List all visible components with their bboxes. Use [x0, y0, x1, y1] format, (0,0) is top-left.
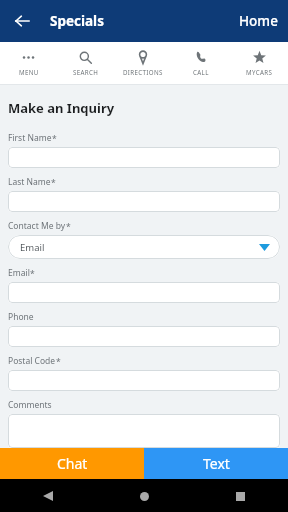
- staticText: CALL: [193, 68, 209, 76]
- button[interactable]: Home: [229, 4, 288, 38]
- button[interactable]: Text input: [8, 282, 280, 303]
- staticText: Comments: [8, 399, 52, 411]
- staticText: Specials: [50, 12, 104, 30]
- button[interactable]: Text: [144, 448, 288, 479]
- staticText: *: [56, 356, 61, 368]
- button[interactable]: Text input: [8, 147, 280, 168]
- staticText: Make an Inquiry: [8, 99, 115, 117]
- staticText: First Name: [8, 132, 52, 144]
- button[interactable]: Text input: [8, 414, 280, 448]
- staticText: Chat: [57, 454, 88, 473]
- button[interactable]: Text input: [8, 326, 280, 347]
- staticText: MENU: [19, 68, 39, 76]
- button[interactable]: Text input: [8, 370, 280, 391]
- staticText: Email: [20, 241, 45, 254]
- staticText: Home: [239, 12, 278, 30]
- staticText: DIRECTIONS: [123, 68, 163, 76]
- button[interactable]: Home: [131, 483, 157, 509]
- button[interactable]: Chat: [0, 448, 144, 479]
- staticText: Contact Me by: [8, 220, 66, 232]
- staticText: Text: [203, 454, 230, 473]
- staticText: Phone: [8, 311, 34, 323]
- button[interactable]: Text input: [8, 191, 280, 212]
- staticText: Last Name: [8, 176, 51, 188]
- button[interactable]: Back: [7, 6, 37, 36]
- button[interactable]: SEARCH: [57, 42, 114, 84]
- button[interactable]: CALL: [172, 42, 230, 84]
- staticText: Postal Code: [8, 355, 56, 367]
- staticText: *: [51, 177, 56, 189]
- button[interactable]: DIRECTIONS: [114, 42, 172, 84]
- button[interactable]: Recent apps: [227, 483, 253, 509]
- staticText: MYCARS: [246, 68, 273, 76]
- staticText: *: [66, 221, 71, 233]
- button[interactable]: MENU: [0, 42, 57, 84]
- staticText: *: [52, 133, 57, 145]
- staticText: Email: [8, 267, 30, 279]
- button[interactable]: MYCARS: [230, 42, 288, 84]
- button[interactable]: Back: [35, 483, 61, 509]
- staticText: *: [30, 268, 35, 280]
- button[interactable]: Email: [8, 235, 280, 259]
- staticText: SEARCH: [73, 68, 99, 76]
